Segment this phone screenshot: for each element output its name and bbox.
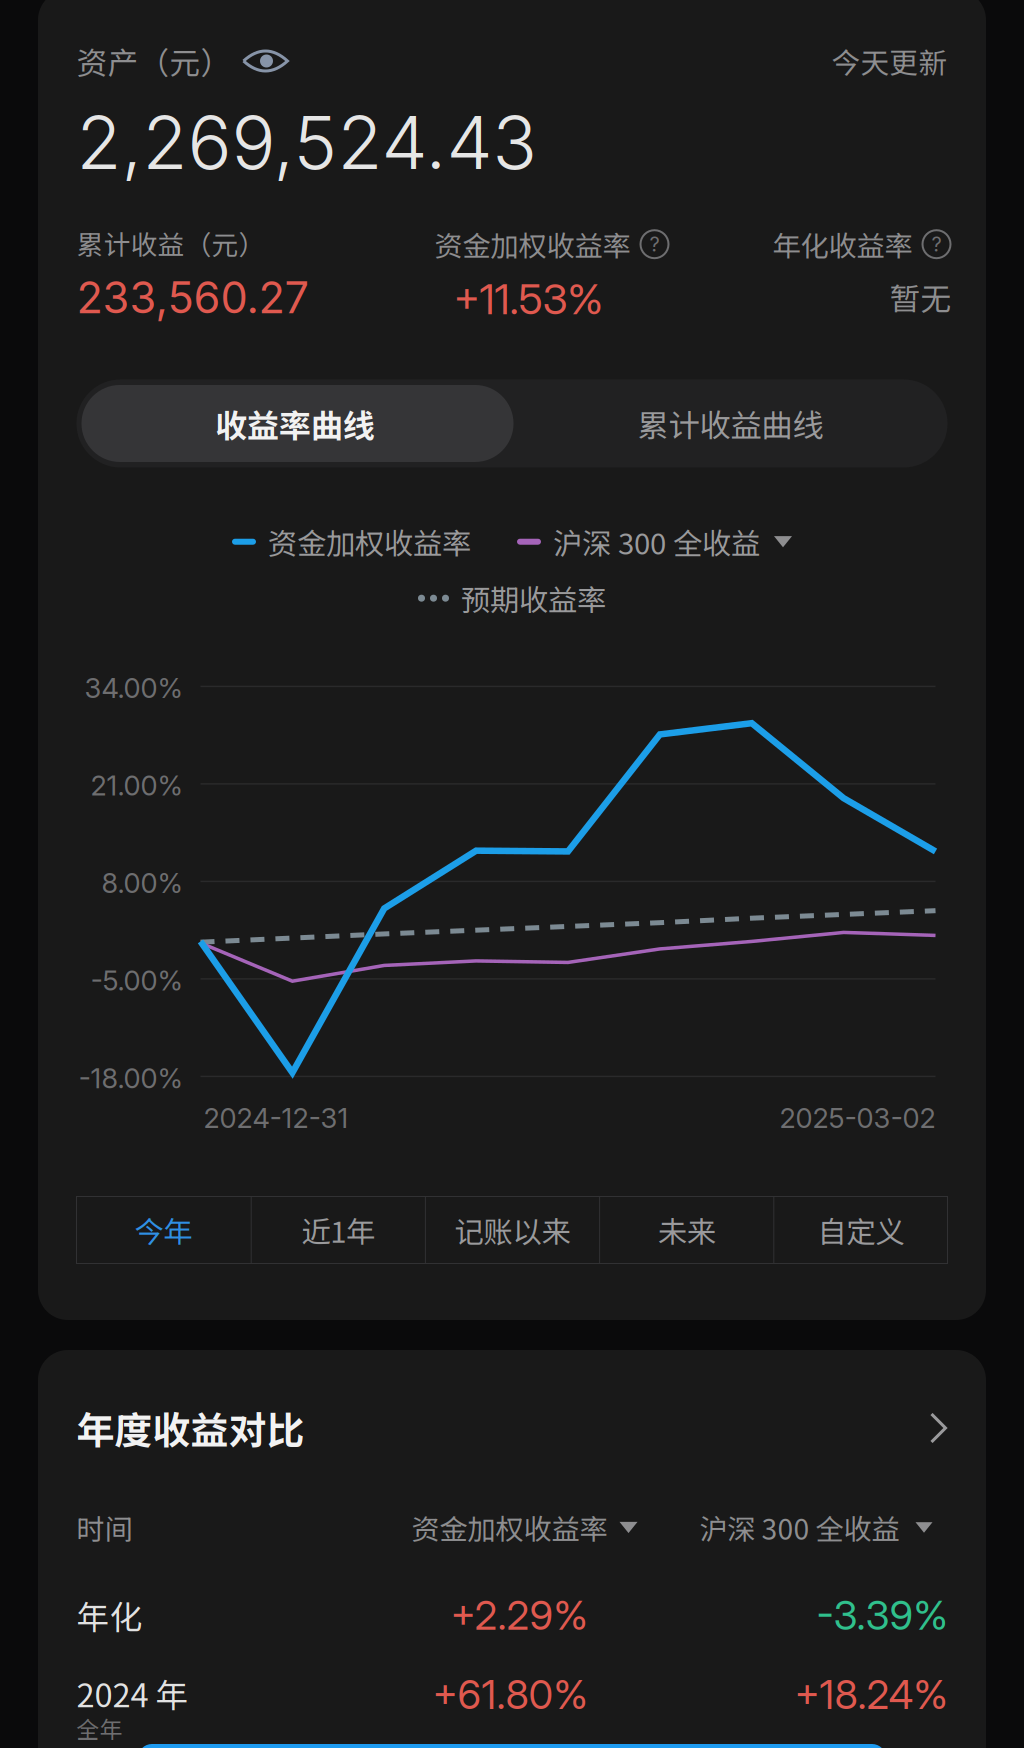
staticText: 年化收益率 <box>772 224 912 265</box>
staticText: 累计收益曲线 <box>637 401 823 446</box>
staticText: ? <box>931 232 941 256</box>
staticText: 沪深 300 全收益 <box>553 520 760 563</box>
staticText: 暂无 <box>889 275 951 319</box>
button[interactable]: 未来 <box>599 1196 773 1263</box>
staticText: 8.00% <box>101 866 182 899</box>
staticText: 2025-03-02 <box>779 1101 935 1134</box>
staticText: 资产（元） <box>76 39 231 83</box>
button[interactable]: 今年 <box>76 1196 251 1263</box>
staticText: 全年 <box>76 1712 122 1744</box>
staticText: 记账以来 <box>454 1209 570 1251</box>
button[interactable]: 收益率曲线 <box>76 379 513 467</box>
staticText: ? <box>649 232 659 256</box>
button[interactable]: 记账以来 <box>425 1196 599 1263</box>
staticText: 2,269,524.43 <box>76 98 536 187</box>
staticText: 34.00% <box>84 671 182 704</box>
staticText: +11.53% <box>453 274 603 324</box>
staticText: 自定义 <box>817 1209 904 1251</box>
staticText: +18.24% <box>794 1670 947 1719</box>
staticText: 21.00% <box>90 769 182 802</box>
staticText: 时间 <box>76 1507 132 1548</box>
staticText: 预期收益率 <box>461 577 606 619</box>
button[interactable]: 记一笔 <box>138 1744 886 1748</box>
staticText: 年化 <box>76 1591 142 1639</box>
staticText: 2024 年 <box>76 1669 188 1717</box>
staticText: 2024-12-31 <box>203 1101 348 1134</box>
staticText: +2.29% <box>450 1591 587 1639</box>
staticText: 233,560.27 <box>76 271 309 324</box>
staticText: 资金加权收益率 <box>434 224 630 265</box>
staticText: +61.80% <box>432 1670 587 1719</box>
button[interactable]: 累计收益曲线 <box>513 379 947 467</box>
button[interactable]: 近1年 <box>251 1196 425 1263</box>
staticText: -5.00% <box>90 964 182 997</box>
staticText: -18.00% <box>78 1062 182 1095</box>
staticText: 今年 <box>135 1209 193 1251</box>
staticText: 今天更新 <box>831 40 947 82</box>
staticText: 未来 <box>658 1209 716 1251</box>
staticText: -3.39% <box>816 1591 947 1639</box>
button[interactable]: 自定义 <box>773 1196 947 1263</box>
staticText: 资金加权收益率 <box>411 1507 607 1548</box>
staticText: 沪深 300 全收益 <box>699 1507 899 1548</box>
button[interactable]: 年度收益对比 <box>76 1350 947 1448</box>
staticText: 年度收益对比 <box>76 1401 304 1455</box>
staticText: 收益率曲线 <box>215 400 375 447</box>
staticText: 资金加权收益率 <box>268 520 471 563</box>
staticText: 近1年 <box>301 1209 375 1251</box>
staticText: 累计收益（元） <box>76 224 265 262</box>
